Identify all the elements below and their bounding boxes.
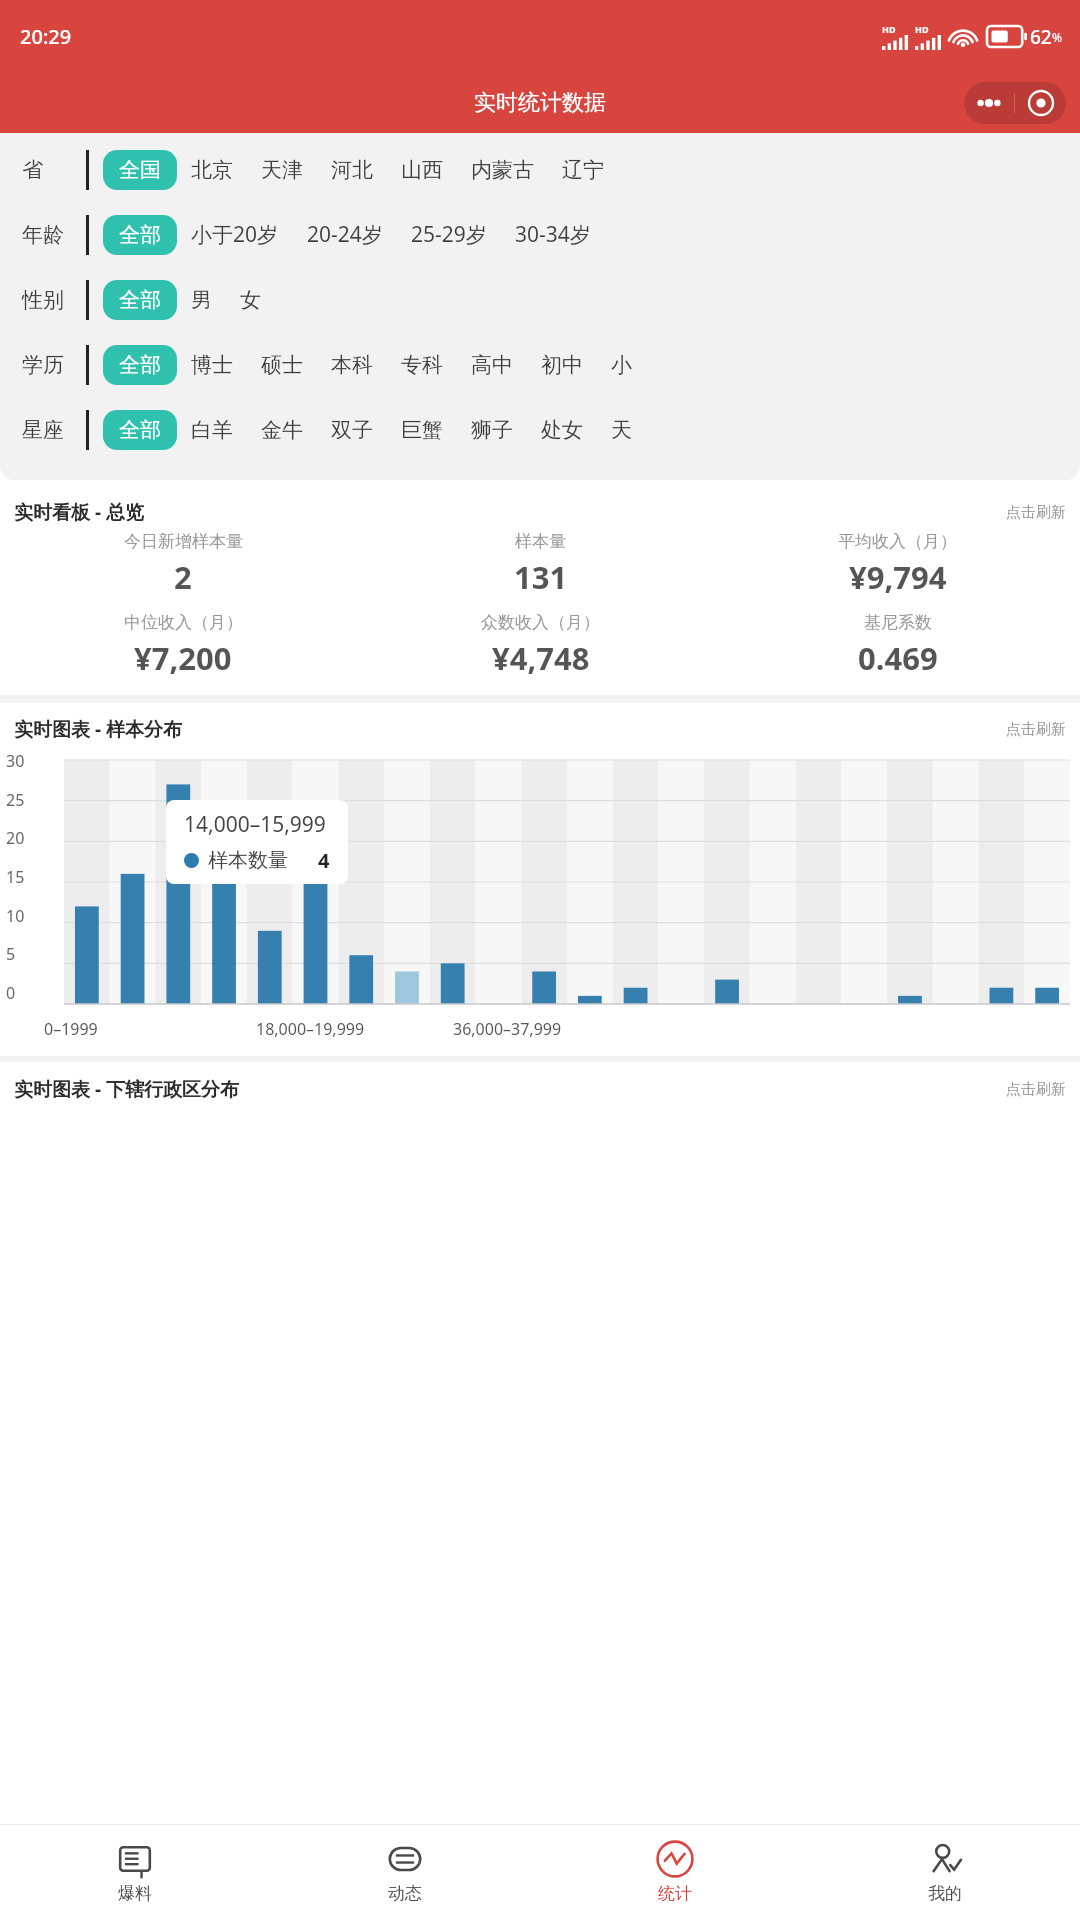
- button[interactable]: 全部: [103, 345, 177, 385]
- button[interactable]: 20-24岁: [293, 213, 397, 256]
- button[interactable]: 样本量: [362, 531, 719, 598]
- staticText: 山西: [401, 157, 443, 183]
- staticText: 2: [174, 556, 192, 598]
- staticText: 北京: [191, 157, 233, 183]
- button[interactable]: 男: [177, 280, 226, 320]
- button[interactable]: 点击刷新: [1006, 720, 1066, 739]
- button[interactable]: 我的: [810, 1824, 1080, 1920]
- staticText: 4: [318, 847, 330, 874]
- staticText: 实时图表 - 下辖行政区分布: [14, 1076, 239, 1102]
- staticText: 0: [6, 982, 48, 1004]
- button[interactable]: 处女: [527, 410, 597, 450]
- staticText: 辽宁: [562, 157, 604, 183]
- staticText: 狮子: [471, 417, 513, 443]
- button[interactable]: 统计: [540, 1824, 810, 1920]
- button[interactable]: 专科: [387, 345, 457, 385]
- staticText: 样本量: [515, 531, 566, 552]
- staticText: 5: [6, 943, 48, 965]
- staticText: 双子: [331, 417, 373, 443]
- staticText: 动态: [388, 1883, 422, 1904]
- button[interactable]: 爆料: [0, 1824, 270, 1920]
- button[interactable]: 金牛: [247, 410, 317, 450]
- staticText: 处女: [541, 417, 583, 443]
- staticText: 河北: [331, 157, 373, 183]
- button[interactable]: 中位收入（月）: [4, 612, 362, 679]
- button[interactable]: 硕士: [247, 345, 317, 385]
- staticText: 0–1999: [44, 1018, 98, 1040]
- button[interactable]: 全部: [103, 280, 177, 320]
- button[interactable]: 众数收入（月）: [362, 612, 719, 679]
- staticText: 25-29岁: [411, 220, 487, 249]
- staticText: ¥7,200: [134, 637, 232, 679]
- button[interactable]: 目标: [1015, 82, 1066, 124]
- button[interactable]: 天津: [247, 150, 317, 190]
- button[interactable]: 北京: [177, 150, 247, 190]
- staticText: 20:29: [20, 23, 72, 50]
- button[interactable]: 狮子: [457, 410, 527, 450]
- staticText: 专科: [401, 352, 443, 378]
- staticText: 学历: [22, 352, 64, 378]
- button[interactable]: 今日新增样本量: [4, 531, 362, 598]
- staticText: 20-24岁: [307, 220, 383, 249]
- staticText: 平均收入（月）: [838, 531, 957, 552]
- staticText: 25: [6, 789, 48, 811]
- staticText: 天津: [261, 157, 303, 183]
- staticText: 本科: [331, 352, 373, 378]
- staticText: 实时统计数据: [474, 89, 606, 117]
- button[interactable]: 30-34岁: [501, 213, 605, 256]
- staticText: 小: [611, 352, 632, 378]
- staticText: 点击刷新: [1006, 1080, 1066, 1099]
- button[interactable]: 高中: [457, 345, 527, 385]
- staticText: 爆料: [118, 1883, 152, 1904]
- button[interactable]: 博士: [177, 345, 247, 385]
- staticText: 我的: [928, 1883, 962, 1904]
- button[interactable]: 小: [597, 345, 646, 385]
- button[interactable]: 全部: [103, 410, 177, 450]
- button[interactable]: 山西: [387, 150, 457, 190]
- staticText: 金牛: [261, 417, 303, 443]
- button[interactable]: 天: [597, 410, 646, 450]
- staticText: 实时看板 - 总览: [14, 499, 144, 525]
- button[interactable]: 25-29岁: [397, 213, 501, 256]
- staticText: 博士: [191, 352, 233, 378]
- button[interactable]: 双子: [317, 410, 387, 450]
- staticText: 全部: [119, 222, 161, 248]
- button[interactable]: 内蒙古: [457, 150, 548, 190]
- staticText: 点击刷新: [1006, 503, 1066, 522]
- button[interactable]: 更多: [964, 82, 1014, 124]
- staticText: 统计: [658, 1883, 692, 1904]
- button[interactable]: 点击刷新: [1006, 503, 1066, 522]
- button[interactable]: 动态: [270, 1824, 540, 1920]
- staticText: 巨蟹: [401, 417, 443, 443]
- button[interactable]: 基尼系数: [719, 612, 1076, 679]
- staticText: 131: [514, 556, 568, 598]
- staticText: 62: [1030, 24, 1052, 50]
- button[interactable]: 全部: [103, 215, 177, 255]
- button[interactable]: 本科: [317, 345, 387, 385]
- staticText: 样本数量: [208, 848, 288, 873]
- staticText: 星座: [22, 417, 64, 443]
- button[interactable]: 女: [226, 280, 275, 320]
- staticText: 全国: [119, 157, 161, 183]
- staticText: 内蒙古: [471, 157, 534, 183]
- staticText: 女: [240, 287, 261, 313]
- button[interactable]: 初中: [527, 345, 597, 385]
- staticText: 0.469: [858, 637, 938, 679]
- button[interactable]: 小于20岁: [177, 213, 293, 256]
- staticText: 男: [191, 287, 212, 313]
- button[interactable]: 全国: [103, 150, 177, 190]
- staticText: 30-34岁: [515, 220, 591, 249]
- button[interactable]: 平均收入（月）: [719, 531, 1076, 598]
- button[interactable]: 巨蟹: [387, 410, 457, 450]
- staticText: 15: [6, 866, 48, 888]
- staticText: %: [1052, 29, 1062, 45]
- staticText: 性别: [22, 287, 64, 313]
- button[interactable]: 白羊: [177, 410, 247, 450]
- staticText: 30: [6, 750, 48, 772]
- button[interactable]: 河北: [317, 150, 387, 190]
- button[interactable]: 辽宁: [548, 150, 618, 190]
- staticText: 高中: [471, 352, 513, 378]
- staticText: 全部: [119, 417, 161, 443]
- staticText: ¥4,748: [492, 637, 590, 679]
- staticText: 20: [6, 827, 48, 849]
